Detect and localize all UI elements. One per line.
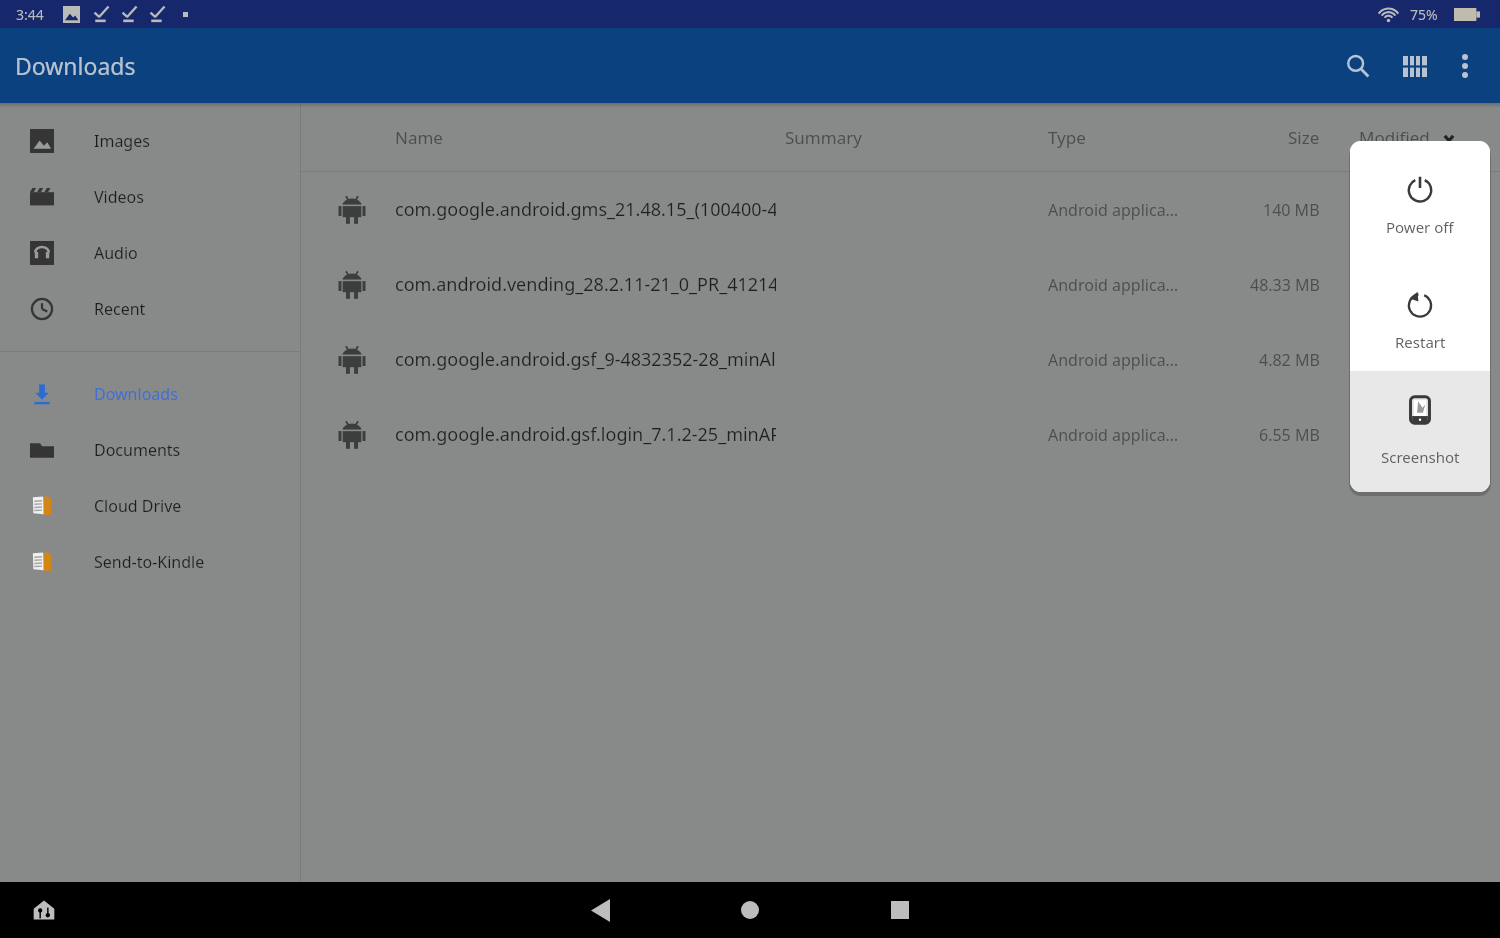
- staticText: com.google.android.gsf.login_7.1.2-25_mi…: [395, 422, 776, 447]
- staticText: Type: [1048, 126, 1086, 149]
- staticText: 3:44: [16, 5, 44, 24]
- button[interactable]: Modified: [1359, 126, 1446, 149]
- staticText: Android applica…: [1048, 349, 1179, 371]
- button[interactable]: Documents: [0, 422, 300, 478]
- staticText: Android applica…: [1048, 424, 1179, 446]
- staticText: 140 MB: [1263, 199, 1320, 221]
- button[interactable]: Back: [572, 882, 628, 938]
- staticText: Downloads: [94, 383, 178, 405]
- button[interactable]: Audio: [0, 225, 300, 281]
- staticText: Videos: [94, 186, 144, 208]
- button[interactable]: Screenshot: [1350, 371, 1490, 492]
- button[interactable]: More options: [1441, 42, 1489, 90]
- staticText: Audio: [94, 242, 138, 264]
- staticText: Documents: [94, 439, 181, 461]
- button[interactable]: com.android.vending_28.2.11-21_0_PR_4121…: [301, 247, 1500, 322]
- button[interactable]: Cloud Drive: [0, 478, 300, 534]
- staticText: com.google.android.gsf_9-4832352-28_minA…: [395, 347, 776, 372]
- button[interactable]: Recent: [0, 281, 300, 337]
- button[interactable]: Power off: [1350, 141, 1490, 256]
- staticText: Restart: [1395, 332, 1446, 352]
- staticText: Name: [395, 126, 443, 149]
- staticText: 48.33 MB: [1250, 274, 1320, 296]
- staticText: 4.82 MB: [1259, 349, 1320, 371]
- staticText: Power off: [1386, 217, 1454, 237]
- button[interactable]: Search: [1334, 42, 1382, 90]
- staticText: Cloud Drive: [94, 495, 182, 517]
- button[interactable]: Videos: [0, 169, 300, 225]
- staticText: Android applica…: [1048, 199, 1179, 221]
- staticText: com.android.vending_28.2.11-21_0_PR_4121…: [395, 272, 776, 297]
- staticText: 75%: [1410, 5, 1438, 24]
- staticText: Send-to-Kindle: [94, 551, 205, 573]
- staticText: Images: [94, 130, 150, 152]
- staticText: 6.55 MB: [1259, 424, 1320, 446]
- staticText: Summary: [785, 126, 862, 149]
- button[interactable]: IME switcher: [26, 892, 62, 928]
- button[interactable]: Downloads: [0, 366, 300, 422]
- button[interactable]: Recents: [872, 882, 928, 938]
- staticText: Downloads: [15, 50, 136, 81]
- button[interactable]: Home: [722, 882, 778, 938]
- staticText: Modified: [1359, 126, 1430, 149]
- button[interactable]: Images: [0, 113, 300, 169]
- button[interactable]: com.google.android.gms_21.48.15_(100400-…: [301, 172, 1500, 247]
- staticText: Size: [1288, 126, 1320, 149]
- button[interactable]: Send-to-Kindle: [0, 534, 300, 590]
- button[interactable]: Grid view: [1391, 42, 1439, 90]
- button[interactable]: Restart: [1350, 256, 1490, 371]
- staticText: com.google.android.gms_21.48.15_(100400-…: [395, 197, 776, 222]
- button[interactable]: com.google.android.gsf.login_7.1.2-25_mi…: [301, 397, 1500, 472]
- staticText: Recent: [94, 298, 146, 320]
- button[interactable]: com.google.android.gsf_9-4832352-28_minA…: [301, 322, 1500, 397]
- staticText: Android applica…: [1048, 274, 1179, 296]
- staticText: Screenshot: [1381, 447, 1460, 467]
